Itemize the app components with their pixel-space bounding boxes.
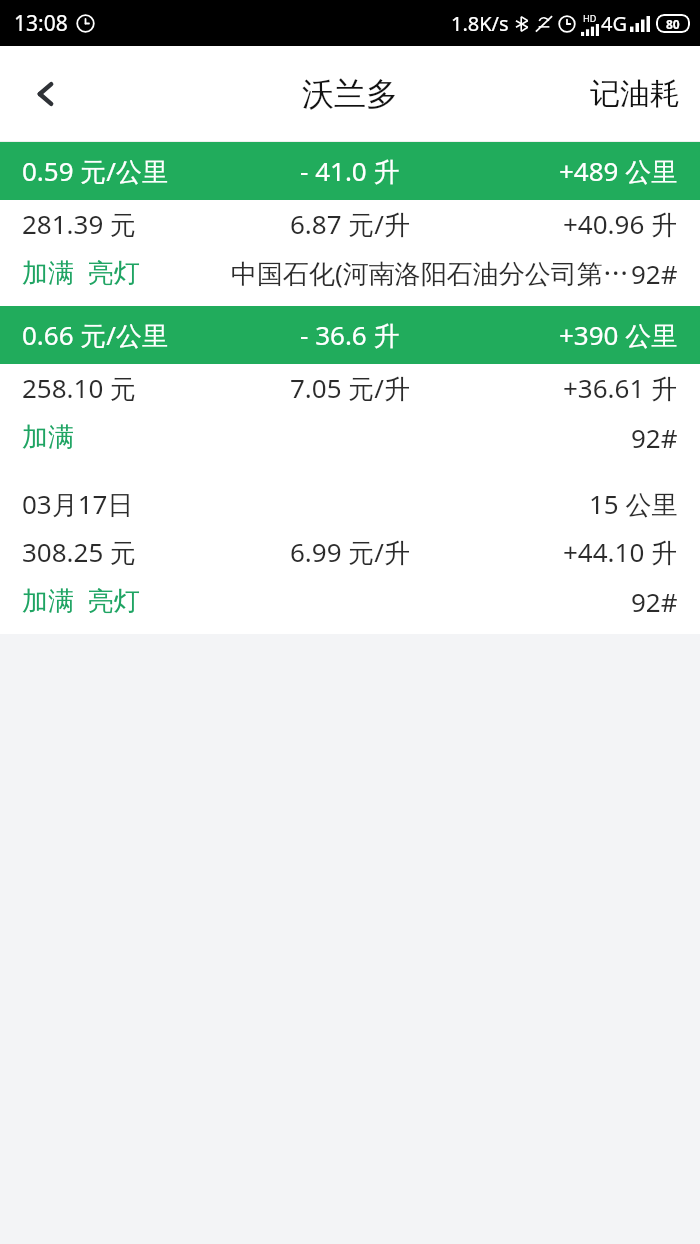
- staticText: 03月30日: [22, 322, 134, 358]
- staticText: 04月11日: [22, 158, 134, 194]
- staticText: 13:08: [14, 9, 68, 38]
- staticText: 894 公里: [574, 158, 678, 194]
- staticText: 0.66 元/公里: [22, 317, 169, 353]
- staticText: HD: [583, 12, 597, 24]
- staticText: +44.10 升: [563, 534, 678, 570]
- staticText: 0.59 元/公里: [22, 153, 169, 189]
- staticText: - 41.0 升: [300, 153, 400, 189]
- staticText: 8.38升/百公里: [267, 158, 433, 194]
- staticText: 1.8K/s: [451, 10, 509, 37]
- staticText: +40.96 升: [563, 206, 678, 242]
- staticText: 308.25 元: [22, 534, 137, 570]
- staticText: 6.87 元/升: [290, 206, 411, 242]
- staticText: 92#: [631, 420, 678, 455]
- staticText: 亮灯: [88, 585, 140, 618]
- staticText: 沃兰多: [302, 74, 398, 114]
- staticText: 加满: [22, 257, 74, 290]
- staticText: 281.39 元: [22, 206, 137, 242]
- staticText: 92#: [631, 256, 678, 291]
- staticText: - 36.6 升: [300, 317, 400, 353]
- button[interactable]: 0.59 元/公里: [0, 142, 700, 200]
- staticText: 4G: [601, 10, 627, 37]
- staticText: 92#: [631, 584, 678, 619]
- staticText: 7.05 元/升: [290, 370, 411, 406]
- staticText: 80: [666, 16, 680, 32]
- button[interactable]: 0.66 元/公里: [0, 306, 700, 364]
- button[interactable]: 04月11日: [0, 142, 700, 306]
- staticText: 亮灯: [88, 257, 140, 290]
- staticText: +489 公里: [559, 153, 678, 189]
- staticText: 记油耗: [590, 75, 680, 113]
- staticText: 15 公里: [589, 486, 678, 522]
- button[interactable]: 03月30日: [0, 306, 700, 470]
- staticText: 405 公里: [574, 322, 678, 358]
- staticText: +390 公里: [559, 317, 678, 353]
- staticText: 9.39升/百公里: [267, 322, 433, 358]
- staticText: 03月17日: [22, 486, 134, 522]
- staticText: 6.99 元/升: [290, 534, 411, 570]
- staticText: 258.10 元: [22, 370, 137, 406]
- staticText: +36.61 升: [563, 370, 678, 406]
- staticText: 中国石化(河南洛阳石油分公司第一加油站): [231, 255, 631, 291]
- button[interactable]: 03月17日: [0, 470, 700, 634]
- button[interactable]: 记油耗: [570, 61, 700, 127]
- staticText: 加满: [22, 421, 74, 454]
- button[interactable]: Back: [18, 66, 74, 122]
- staticText: 加满: [22, 585, 74, 618]
